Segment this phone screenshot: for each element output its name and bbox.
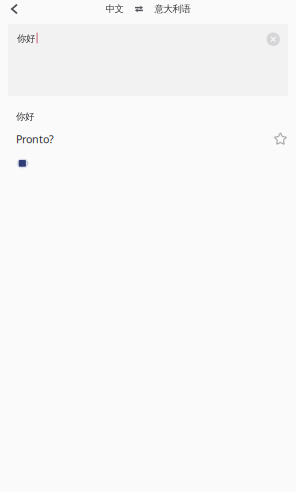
button[interactable]: Play pronunciation: [13, 154, 32, 173]
button[interactable]: Back: [0, 1, 31, 23]
button[interactable]: Swap languages: [100, 0, 195, 24]
staticText: 你好: [17, 33, 35, 44]
button[interactable]: Clear text: [263, 29, 283, 49]
staticText: 意大利语: [154, 3, 190, 15]
staticText: 你好: [16, 111, 34, 122]
staticText: 中文: [105, 3, 123, 15]
staticText: Pronto?: [16, 132, 54, 146]
button[interactable]: Add to favourites: [271, 129, 290, 149]
